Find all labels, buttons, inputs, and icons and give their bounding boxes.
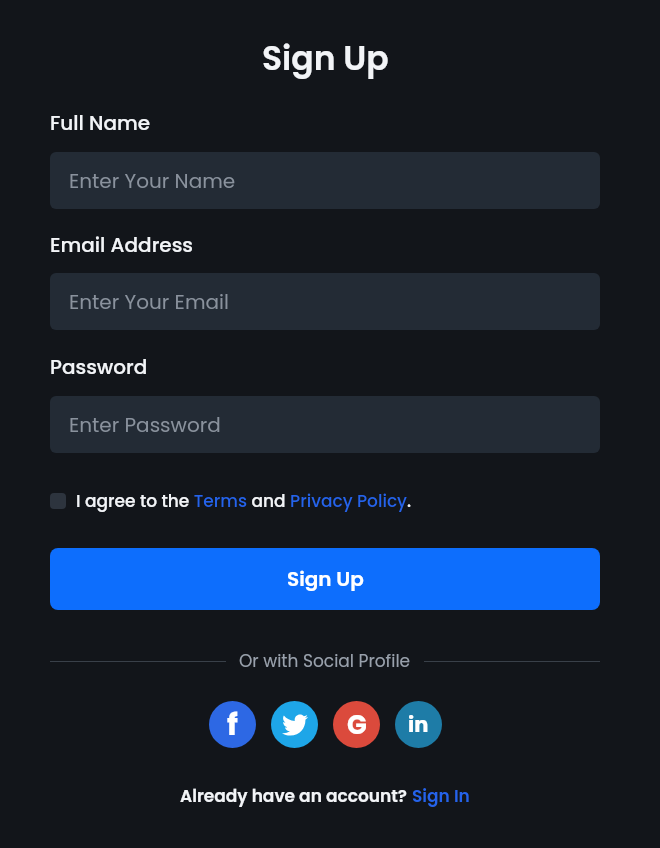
staticText: Email Address xyxy=(50,231,194,259)
button[interactable]: Enter Your Email xyxy=(50,273,600,330)
staticText: I agree to the Terms and Privacy Policy. xyxy=(76,489,412,513)
staticText: Enter Your Name xyxy=(69,167,236,195)
staticText: f xyxy=(227,704,238,746)
staticText: Or with Social Profile xyxy=(239,649,411,673)
staticText: Enter Password xyxy=(69,411,221,439)
button[interactable]: Sign Up xyxy=(50,548,600,610)
button[interactable]: in xyxy=(395,701,442,748)
staticText: Sign Up xyxy=(287,565,364,593)
button[interactable]: Sign In xyxy=(412,784,470,808)
staticText: Password xyxy=(50,353,148,381)
button[interactable]: I agree to the Terms and Privacy Policy. xyxy=(50,485,600,517)
button[interactable] xyxy=(271,701,318,748)
staticText: Already have an account? xyxy=(180,784,412,808)
staticText: G xyxy=(347,707,367,743)
staticText: Sign Up xyxy=(262,35,389,81)
button[interactable]: G xyxy=(333,701,380,748)
staticText: Enter Your Email xyxy=(69,288,229,316)
staticText: in xyxy=(408,710,429,739)
button[interactable]: f xyxy=(209,701,256,748)
button[interactable]: Enter Your Name xyxy=(50,152,600,209)
staticText: Full Name xyxy=(50,109,151,137)
button[interactable]: Enter Password xyxy=(50,396,600,453)
